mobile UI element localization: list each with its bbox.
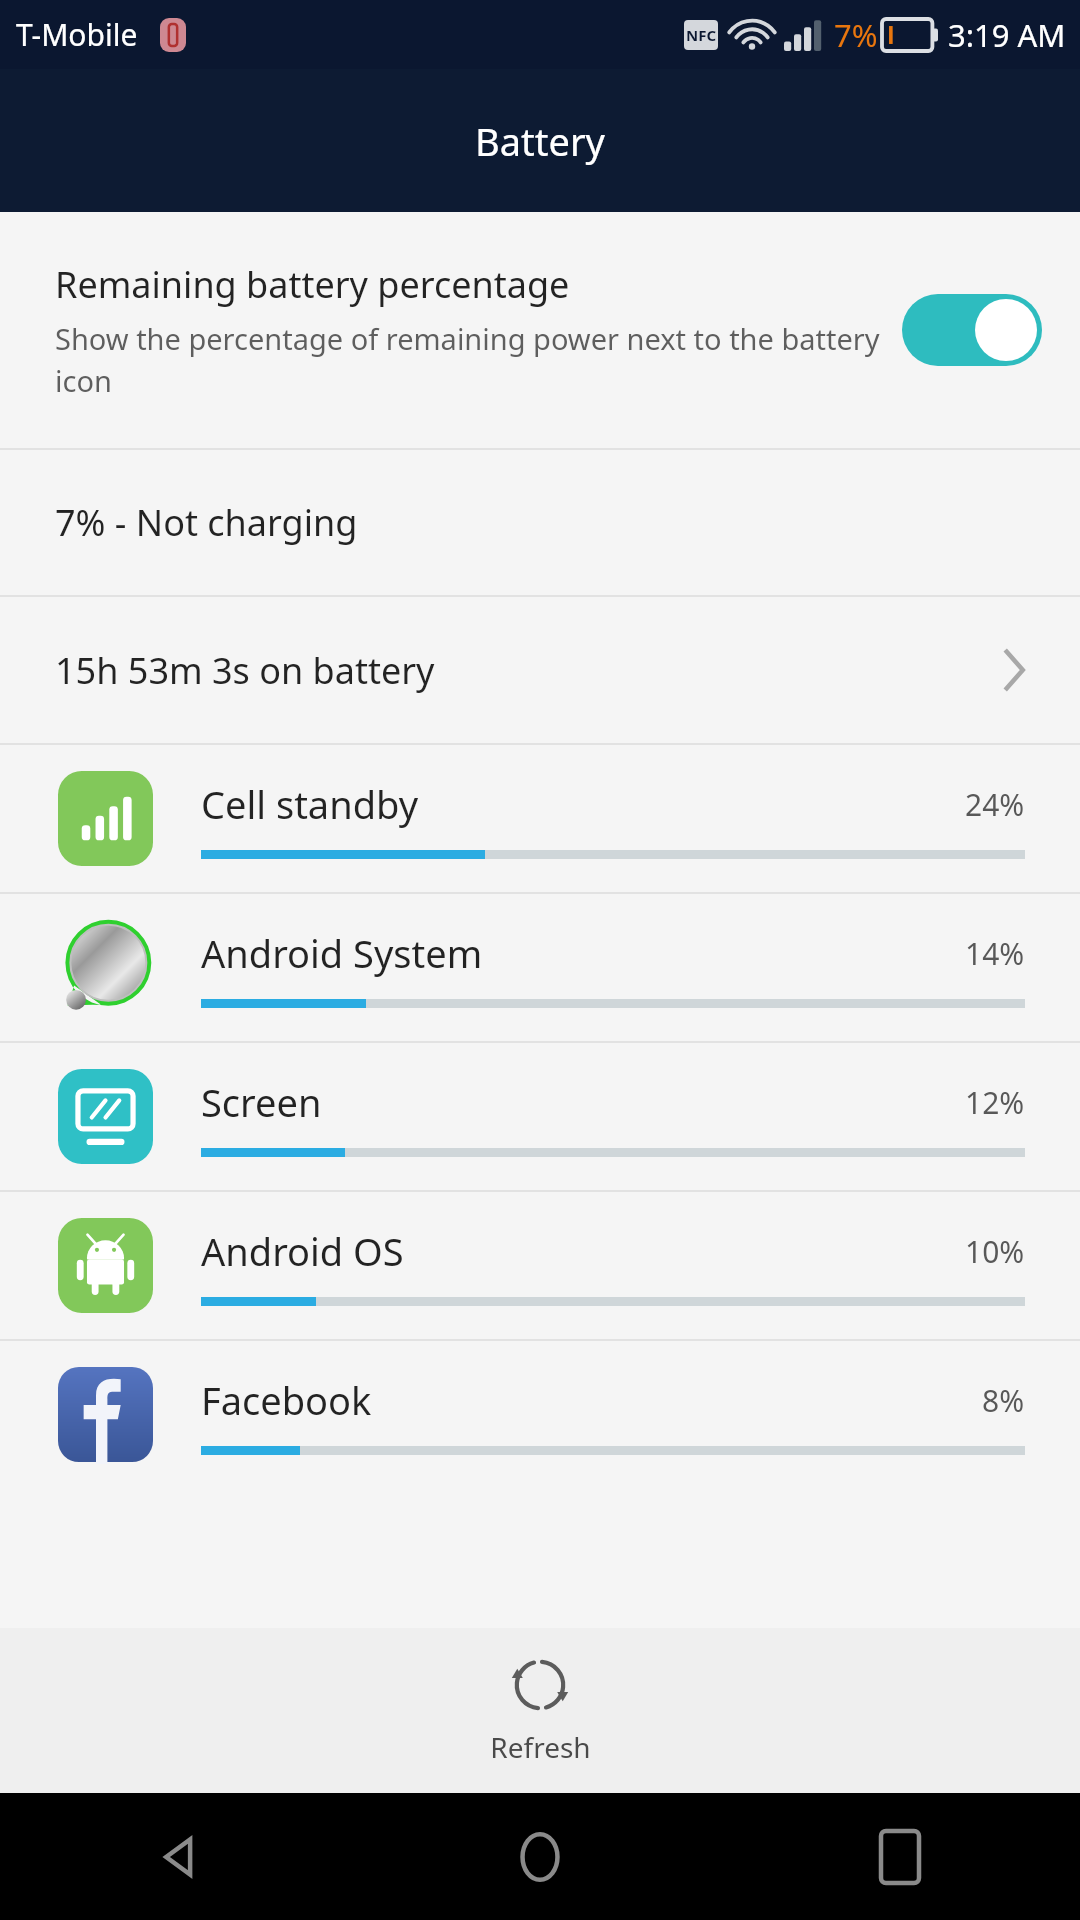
staticText: 24% [965, 784, 1025, 825]
staticText: Android OS [201, 1225, 965, 1277]
staticText: Android System [201, 927, 965, 979]
button[interactable]: 7% - Not charging [0, 450, 1080, 595]
button[interactable]: Back [0, 1793, 360, 1920]
button[interactable]: Recent apps [720, 1793, 1080, 1920]
button[interactable]: Android OS [0, 1192, 1080, 1339]
staticText: Facebook [201, 1374, 982, 1426]
staticText: T-Mobile [16, 14, 138, 55]
staticText: 7% - Not charging [55, 498, 1025, 547]
button[interactable]: Screen [0, 1043, 1080, 1190]
staticText: Remaining battery percentage [55, 260, 570, 309]
staticText: Battery [475, 115, 605, 167]
staticText: Refresh [490, 1728, 591, 1766]
button[interactable]: Android System [0, 894, 1080, 1041]
button[interactable]: Facebook [0, 1341, 1080, 1488]
staticText: 3:19 AM [948, 14, 1066, 56]
staticText: 8% [982, 1380, 1025, 1421]
staticText: 14% [965, 933, 1025, 974]
button[interactable]: Home [360, 1793, 720, 1920]
staticText: Screen [201, 1076, 965, 1128]
staticText: 7% [834, 14, 878, 56]
staticText: Show the percentage of remaining power n… [55, 319, 880, 400]
button[interactable]: 15h 53m 3s on battery [0, 597, 1080, 743]
staticText: Cell standby [201, 778, 965, 830]
button[interactable]: Remaining battery percentage toggle [902, 294, 1042, 366]
button[interactable]: Remaining battery percentage [0, 212, 1080, 448]
staticText: 15h 53m 3s on battery [55, 646, 1003, 695]
button[interactable]: Refresh [0, 1628, 1080, 1793]
button[interactable]: Cell standby [0, 745, 1080, 892]
staticText: 12% [965, 1082, 1025, 1123]
staticText: NFC [686, 25, 717, 45]
staticText: 10% [965, 1231, 1025, 1272]
